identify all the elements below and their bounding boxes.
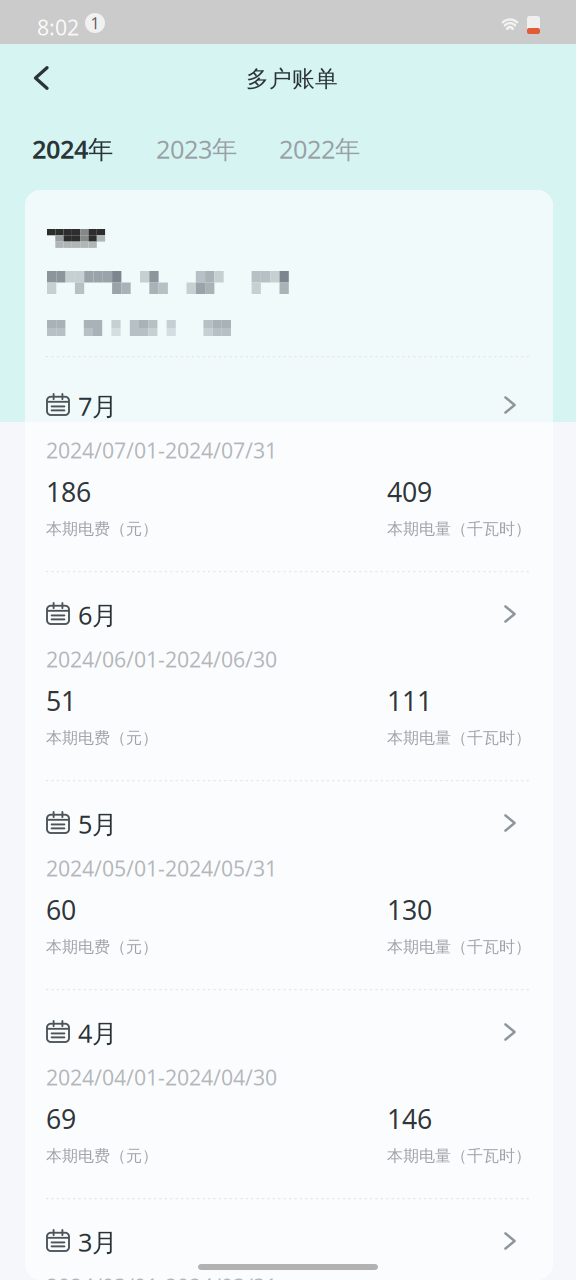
staticText: 60	[46, 892, 76, 927]
button[interactable]: 5月	[46, 806, 532, 844]
staticText: 111	[387, 683, 432, 718]
staticText: 2024/04/01-2024/04/30	[46, 1063, 277, 1091]
staticText: 409	[387, 474, 432, 509]
button[interactable]: 2024年	[22, 123, 123, 175]
staticText: 2024/05/01-2024/05/31	[46, 854, 277, 882]
staticText: 2022年	[279, 132, 360, 166]
staticText: 本期电费（元）	[46, 1146, 158, 1166]
button[interactable]: 2022年	[269, 123, 370, 175]
staticText: 2024年	[32, 132, 113, 166]
staticText: 本期电费（元）	[46, 728, 158, 748]
staticText: 2024/03/01-2024/03/31	[46, 1272, 277, 1280]
staticText: 本期电费（元）	[46, 937, 158, 957]
staticText: 2024/06/01-2024/06/30	[46, 645, 277, 673]
staticText: 多户账单	[246, 65, 338, 93]
staticText: 2024/07/01-2024/07/31	[46, 436, 277, 464]
staticText: 本期电量（千瓦时）	[387, 937, 531, 957]
button[interactable]: 4月	[46, 1015, 532, 1053]
button[interactable]: 6月	[46, 597, 532, 635]
staticText: 69	[46, 1101, 76, 1136]
staticText: 本期电量（千瓦时）	[387, 1146, 531, 1166]
staticText: 8:02	[37, 13, 79, 41]
staticText: 1	[90, 12, 99, 34]
staticText: 5月	[78, 807, 117, 841]
staticText: 本期电量（千瓦时）	[387, 519, 531, 539]
staticText: 186	[46, 474, 91, 509]
staticText: 2023年	[156, 132, 237, 166]
button[interactable]: 3月	[46, 1224, 532, 1262]
staticText: 3月	[78, 1225, 117, 1259]
button[interactable]: Back	[15, 52, 67, 104]
staticText: 6月	[78, 598, 117, 632]
staticText: 130	[387, 892, 432, 927]
staticText: 51	[46, 683, 76, 718]
staticText: 4月	[78, 1016, 117, 1050]
staticText: 本期电费（元）	[46, 519, 158, 539]
staticText: 本期电量（千瓦时）	[387, 728, 531, 748]
staticText: 146	[387, 1101, 432, 1136]
button[interactable]: 2023年	[146, 123, 247, 175]
staticText: 7月	[78, 389, 117, 423]
button[interactable]: 7月	[46, 388, 532, 426]
